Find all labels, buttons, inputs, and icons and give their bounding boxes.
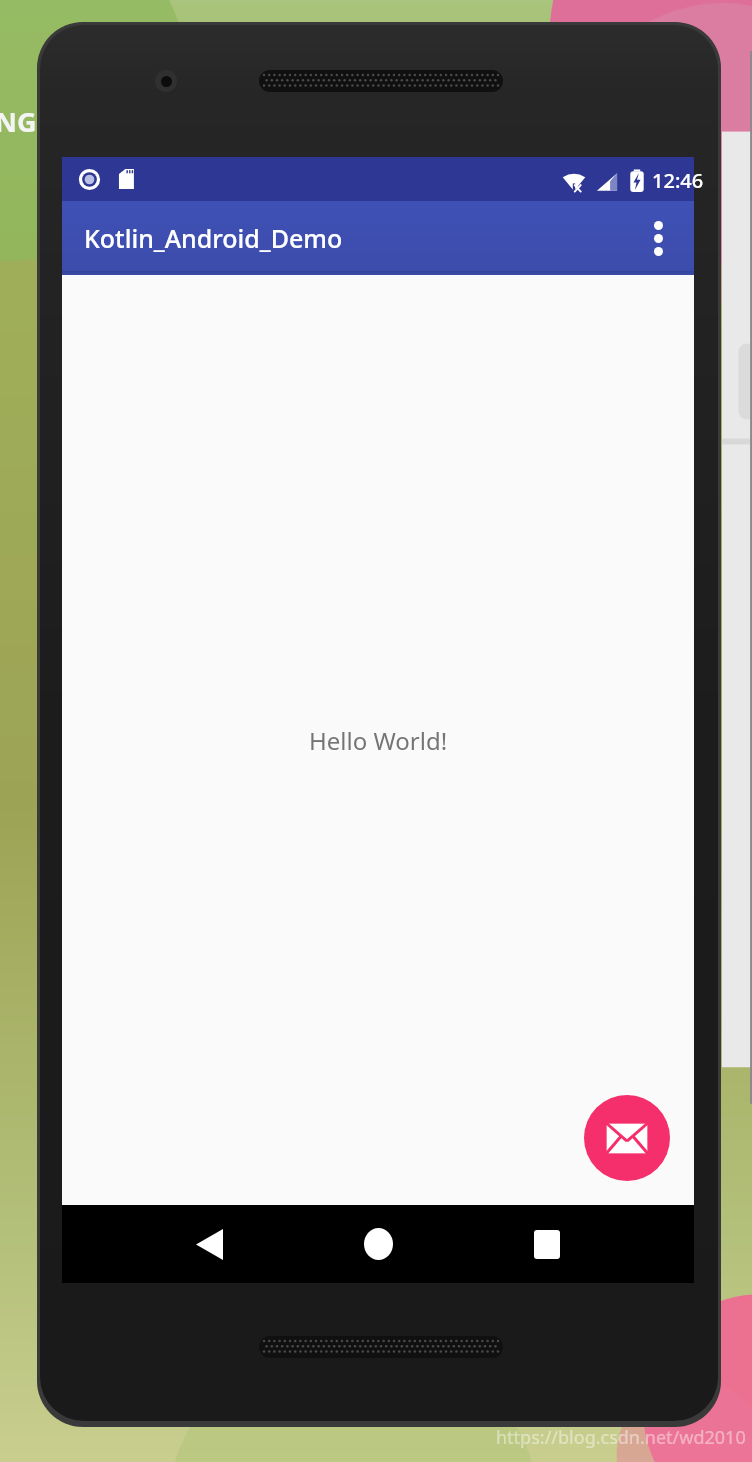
button[interactable]: Recent apps — [504, 1205, 590, 1283]
staticText: Hello World! — [309, 724, 448, 757]
staticText: Kotlin_Android_Demo — [84, 221, 343, 255]
staticText: NG — [0, 103, 37, 140]
button[interactable]: Back — [166, 1205, 252, 1283]
staticText: 12:46 — [652, 167, 704, 194]
button[interactable]: Home — [335, 1205, 421, 1283]
staticText: https://blog.csdn.net/wd2010 — [496, 1425, 746, 1450]
button[interactable]: Send email — [584, 1095, 670, 1181]
button[interactable]: More options — [630, 210, 686, 266]
